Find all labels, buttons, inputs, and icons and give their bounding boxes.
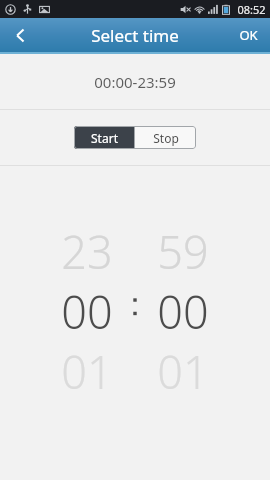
button[interactable]: 01 [47,341,127,391]
staticText: Start [91,130,118,146]
staticText: 01 [61,341,113,391]
staticText: Stop [153,130,179,146]
staticText: 08:52 [237,2,266,17]
button[interactable]: 00 [143,281,223,331]
staticText: 00 [157,281,209,331]
button[interactable]: 00:00-23:59 [0,54,270,109]
button[interactable]: OK [226,18,270,52]
staticText: 01 [157,341,209,391]
button[interactable]: Start [74,126,134,149]
button[interactable]: Back [0,18,40,52]
staticText: 00:00-23:59 [94,72,176,92]
staticText: 00 [61,281,113,331]
staticText: OK [239,26,258,44]
button[interactable]: Stop [135,126,196,149]
button[interactable]: 01 [143,341,223,391]
button[interactable]: 00 [47,281,127,331]
staticText: Select time [91,24,179,47]
staticText: 59 [157,221,209,271]
button[interactable]: 23 [47,221,127,271]
staticText: 23 [61,221,113,271]
button[interactable]: 59 [143,221,223,271]
